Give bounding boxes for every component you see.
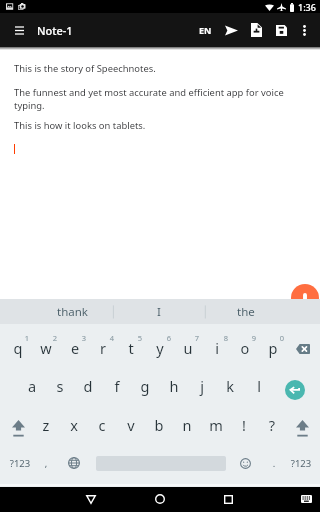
button[interactable]: ?123 bbox=[285, 451, 317, 475]
staticText: v bbox=[117, 415, 145, 435]
button[interactable]: y bbox=[146, 324, 174, 358]
button[interactable]: w bbox=[32, 324, 60, 358]
button[interactable]: p bbox=[259, 324, 287, 358]
staticText: i bbox=[203, 338, 231, 358]
staticText: w bbox=[32, 338, 60, 358]
button[interactable]: t bbox=[117, 324, 145, 358]
staticText: 8 bbox=[220, 333, 232, 343]
staticText: I bbox=[157, 304, 161, 320]
button[interactable]: ?123 bbox=[4, 451, 36, 475]
staticText: 3 bbox=[78, 333, 90, 343]
staticText: ! bbox=[230, 415, 258, 435]
staticText: s bbox=[46, 376, 74, 396]
button[interactable]: Record voice bbox=[291, 284, 319, 312]
staticText: 9 bbox=[248, 333, 260, 343]
button[interactable]: thank bbox=[29, 299, 115, 324]
button[interactable]: l bbox=[245, 362, 273, 396]
button[interactable]: Save bbox=[267, 16, 295, 44]
staticText: 6 bbox=[163, 333, 175, 343]
staticText: c bbox=[88, 415, 116, 435]
button[interactable]: o bbox=[231, 324, 259, 358]
button[interactable]: z bbox=[32, 401, 60, 435]
staticText: n bbox=[173, 415, 201, 435]
staticText: p bbox=[259, 338, 287, 358]
staticText: the bbox=[237, 304, 255, 320]
button[interactable]: Backspace bbox=[289, 335, 317, 363]
staticText: j bbox=[188, 376, 216, 396]
staticText: d bbox=[74, 376, 102, 396]
button[interactable]: m bbox=[202, 401, 230, 435]
button[interactable]: e bbox=[61, 324, 89, 358]
staticText: r bbox=[89, 338, 117, 358]
button[interactable]: k bbox=[216, 362, 244, 396]
staticText: 1:36 bbox=[298, 1, 316, 13]
button[interactable]: I bbox=[116, 299, 202, 324]
staticText: ?123 bbox=[285, 457, 317, 470]
button[interactable]: Change keyboard language bbox=[62, 451, 86, 475]
staticText: y bbox=[146, 338, 174, 358]
staticText: m bbox=[202, 415, 230, 435]
button[interactable]: the bbox=[203, 299, 289, 324]
staticText: o bbox=[231, 338, 259, 358]
staticText: 2 bbox=[49, 333, 61, 343]
staticText: ?123 bbox=[4, 457, 36, 470]
staticText: e bbox=[61, 338, 89, 358]
button[interactable]: x bbox=[60, 401, 88, 435]
button[interactable]: Enter bbox=[285, 380, 305, 400]
staticText: b bbox=[145, 415, 173, 435]
button[interactable]: Recent apps bbox=[216, 487, 240, 511]
staticText: This is the story of Speechnotes. bbox=[14, 62, 156, 75]
staticText: EN bbox=[199, 24, 212, 36]
button[interactable]: EN bbox=[192, 17, 218, 43]
button[interactable]: g bbox=[131, 362, 159, 396]
staticText: , bbox=[30, 457, 62, 470]
staticText: f bbox=[103, 376, 131, 396]
button[interactable]: Open navigation menu bbox=[8, 19, 30, 41]
staticText: 7 bbox=[191, 333, 203, 343]
button[interactable]: b bbox=[145, 401, 173, 435]
staticText: u bbox=[174, 338, 202, 358]
button[interactable]: ! bbox=[230, 401, 258, 435]
staticText: thank bbox=[57, 304, 88, 320]
button[interactable]: New note bbox=[242, 16, 270, 44]
staticText: g bbox=[131, 376, 159, 396]
staticText: ? bbox=[258, 415, 286, 435]
button[interactable]: Shift bbox=[4, 414, 32, 442]
button[interactable]: . bbox=[258, 451, 290, 475]
button[interactable]: j bbox=[188, 362, 216, 396]
button[interactable]: d bbox=[74, 362, 102, 396]
staticText: 5 bbox=[134, 333, 146, 343]
button[interactable]: h bbox=[160, 362, 188, 396]
button[interactable]: Home bbox=[148, 487, 172, 511]
button[interactable]: Caps lock bbox=[288, 414, 316, 442]
button[interactable]: q bbox=[4, 324, 32, 358]
button[interactable]: More options bbox=[290, 16, 318, 44]
button[interactable]: Back bbox=[79, 487, 103, 511]
staticText: x bbox=[60, 415, 88, 435]
button[interactable]: r bbox=[89, 324, 117, 358]
staticText: a bbox=[18, 376, 46, 396]
button[interactable]: s bbox=[46, 362, 74, 396]
staticText: Note-1 bbox=[37, 23, 73, 38]
staticText: k bbox=[216, 376, 244, 396]
staticText: . bbox=[258, 457, 290, 470]
staticText: z bbox=[32, 415, 60, 435]
staticText: q bbox=[4, 338, 32, 358]
staticText: h bbox=[160, 376, 188, 396]
staticText: 1 bbox=[21, 333, 33, 343]
button[interactable]: Emoji bbox=[233, 451, 257, 475]
button[interactable]: Switch keyboard bbox=[296, 489, 316, 509]
button[interactable]: Send bbox=[217, 16, 245, 44]
button[interactable]: u bbox=[174, 324, 202, 358]
staticText: t bbox=[117, 338, 145, 358]
button[interactable]: , bbox=[30, 451, 62, 475]
button[interactable]: f bbox=[103, 362, 131, 396]
staticText: The funnest and yet most accurate and ef… bbox=[14, 86, 300, 111]
button[interactable]: ? bbox=[258, 401, 286, 435]
button[interactable]: i bbox=[203, 324, 231, 358]
button[interactable]: a bbox=[18, 362, 46, 396]
button[interactable]: v bbox=[117, 401, 145, 435]
button[interactable]: n bbox=[173, 401, 201, 435]
button[interactable]: c bbox=[88, 401, 116, 435]
